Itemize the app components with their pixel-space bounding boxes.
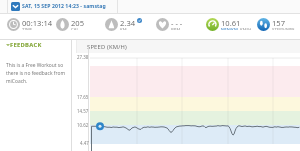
staticText: MIN/KM <box>221 27 238 30</box>
button[interactable]: 2.34 <box>105 18 142 31</box>
staticText: CAL <box>71 27 79 30</box>
staticText: STEPS/MIN <box>272 27 295 30</box>
staticText: 00:13:14 <box>22 18 53 28</box>
staticText: KM <box>120 27 127 30</box>
staticText: 10.62 <box>77 122 89 128</box>
staticText: KM/H <box>240 27 252 30</box>
staticText: 2.34 <box>120 18 136 28</box>
button[interactable]: 00:13:14 <box>7 18 53 31</box>
staticText: 205 <box>71 18 85 28</box>
staticText: 4.47 <box>80 140 89 146</box>
button[interactable]: 157 <box>257 18 295 31</box>
staticText: BPM <box>171 27 181 30</box>
staticText: This is a Free Workout so there is no fe… <box>6 62 67 85</box>
staticText: - - - <box>171 18 183 28</box>
staticText: 17.65 <box>77 94 89 100</box>
staticText: TIME <box>22 27 33 30</box>
button[interactable]: 205 <box>56 18 85 31</box>
staticText: 14.57 <box>77 108 89 114</box>
other: Expand date <box>11 2 20 11</box>
staticText: 157 <box>272 18 286 28</box>
button[interactable]: Expand date <box>11 0 106 13</box>
staticText: 10.61 <box>221 18 241 28</box>
staticText: SAT, 15 SEP 2012 14:23 - samstag <box>22 3 106 10</box>
staticText: 27.38 <box>77 54 89 60</box>
button[interactable]: - - - <box>156 18 183 31</box>
button[interactable]: 10.61 <box>206 18 252 31</box>
button[interactable]: FEEDBACK <box>6 41 42 49</box>
staticText: FEEDBACK <box>10 41 42 49</box>
staticText: SPEED (KM/H) <box>87 43 128 51</box>
